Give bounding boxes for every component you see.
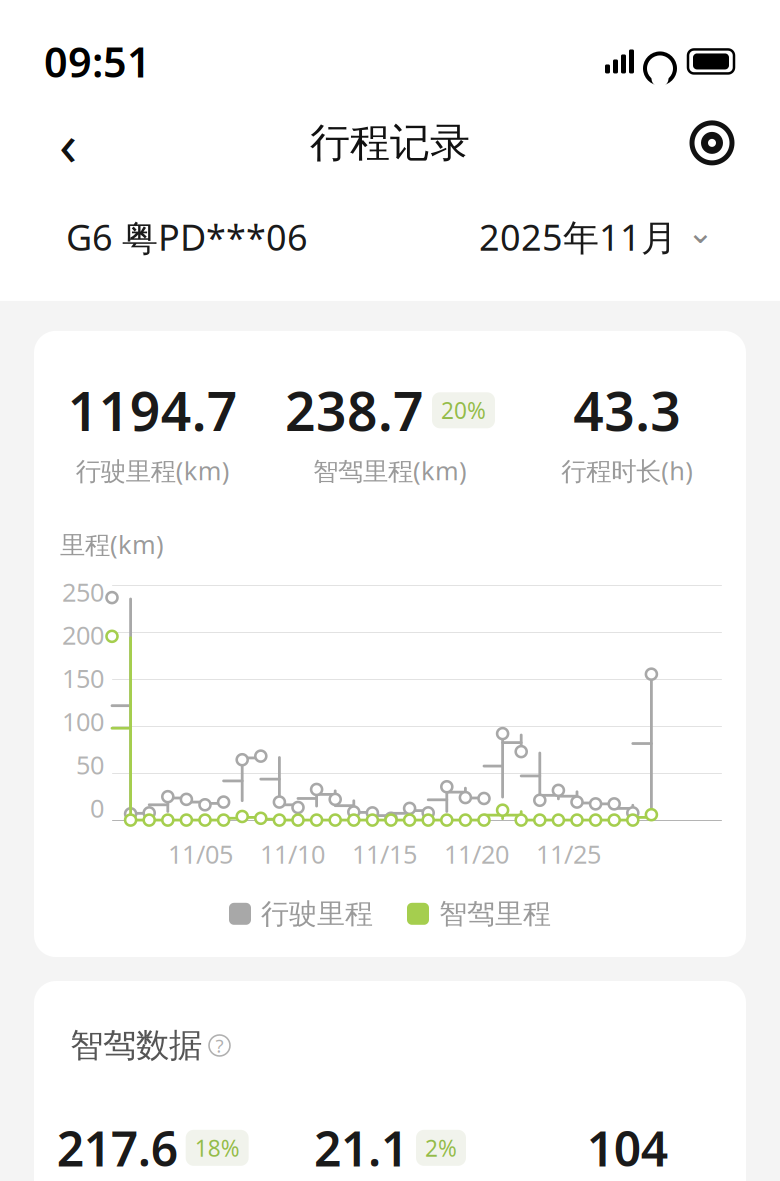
staticText: 09:51 [44,34,151,89]
button[interactable]: 智驾数据说明 [209,1033,230,1058]
staticText: 217.6 [57,1116,178,1180]
staticText: 11/10 [260,837,325,871]
staticText: 1194.7 [68,375,238,446]
staticText: 11/05 [168,837,233,871]
staticText: 2% [425,1133,457,1163]
staticText: 104 [587,1116,668,1180]
staticText: 250 [62,575,104,609]
button[interactable]: 设置 [680,111,744,175]
staticText: 2025年11月 [479,213,677,261]
staticText: 智驾里程 [439,897,551,931]
staticText: 11/20 [444,837,509,871]
staticText: 11/25 [536,837,601,871]
staticText: 11/15 [352,837,417,871]
staticText: 238.7 [285,375,424,446]
button[interactable]: 2025年11月 [479,213,714,261]
staticText: 行程时长(h) [561,454,693,487]
staticText: 100 [62,705,104,738]
staticText: 行驶里程(km) [76,454,230,487]
button[interactable]: G6 粤PD***06 [66,213,308,261]
staticText: 智驾数据 [70,1025,202,1066]
staticText: 43.3 [573,375,681,446]
staticText: 行驶里程 [261,897,373,931]
staticText: 20% [441,395,486,425]
staticText: 18% [195,1133,240,1163]
staticText: 150 [62,661,104,695]
staticText: ⌄ [687,214,714,250]
staticText: 智驾里程(km) [313,454,467,487]
staticText: ‹ [59,104,77,182]
staticText: ? [215,1033,223,1058]
staticText: 21.1 [314,1116,408,1180]
staticText: 200 [62,618,104,652]
button[interactable]: 返回 [36,111,100,175]
staticText: 行程记录 [310,118,470,167]
staticText: G6 粤PD***06 [66,213,308,261]
staticText: 里程(km) [60,527,164,561]
staticText: 0 [90,791,104,825]
staticText: 50 [76,748,104,781]
